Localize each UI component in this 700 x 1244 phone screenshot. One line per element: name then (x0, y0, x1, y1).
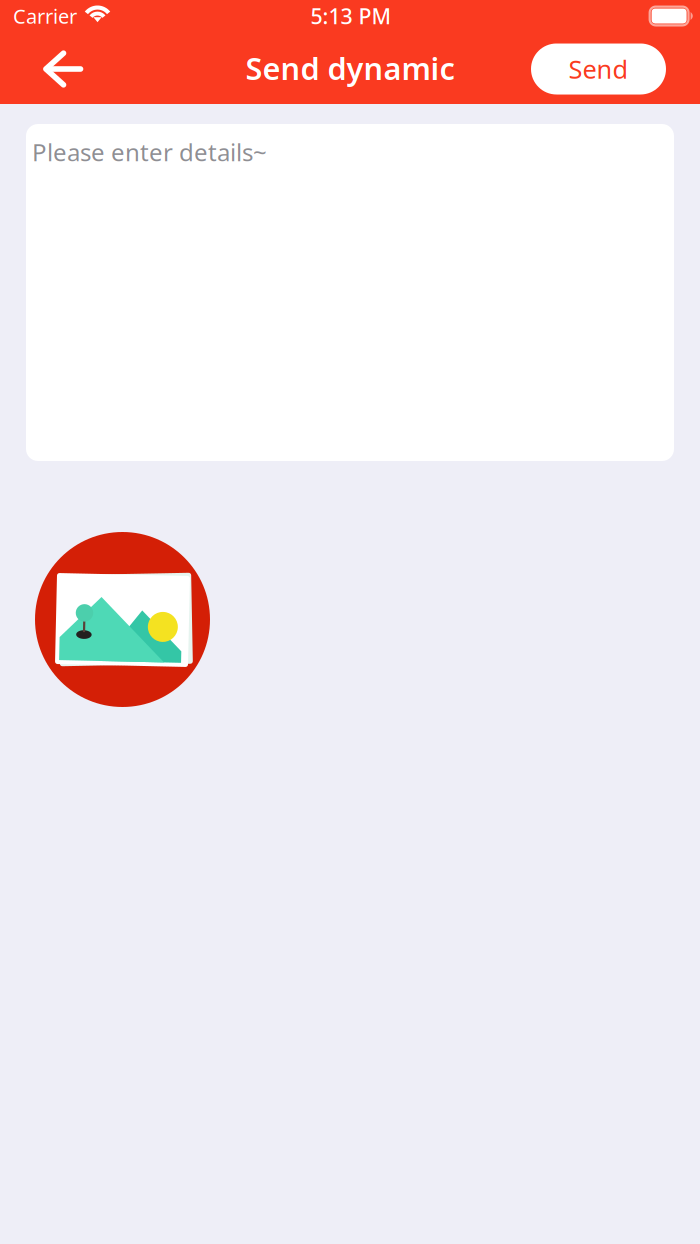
button[interactable]: Add photo (35, 532, 210, 707)
staticText: Please enter details~ (32, 136, 267, 168)
button[interactable]: Send (531, 40, 666, 91)
button[interactable]: Back (31, 35, 95, 97)
staticText: Carrier (13, 3, 77, 29)
staticText: 5:13 PM (310, 2, 391, 30)
button[interactable]: Please enter details~ (26, 124, 674, 461)
staticText: Send dynamic (245, 48, 454, 88)
staticText: Send (568, 52, 628, 86)
